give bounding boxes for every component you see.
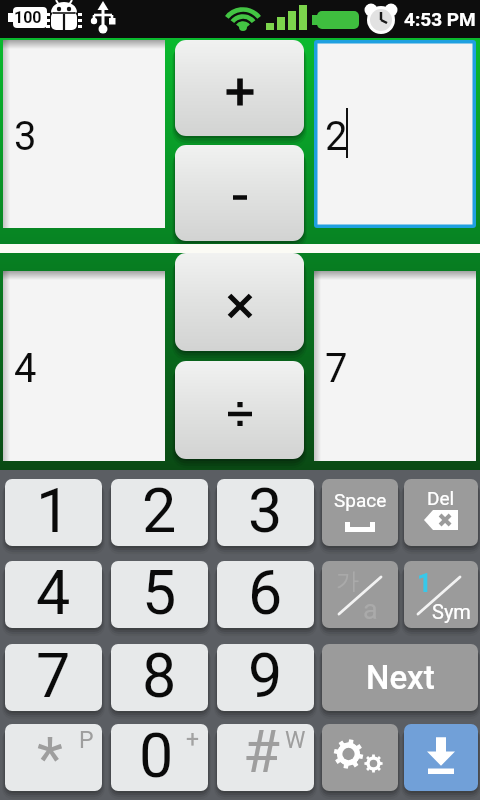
staticText: * bbox=[37, 724, 63, 790]
staticText: 1 bbox=[417, 568, 432, 598]
staticText: P bbox=[79, 727, 94, 754]
staticText: Space bbox=[334, 489, 387, 511]
button[interactable]: Settings bbox=[322, 724, 398, 791]
button[interactable]: 2 bbox=[314, 40, 476, 228]
staticText: 6 bbox=[248, 561, 283, 624]
staticText: 1 bbox=[36, 479, 71, 542]
staticText: # bbox=[243, 724, 280, 783]
button[interactable] bbox=[175, 40, 304, 136]
staticText: 8 bbox=[142, 644, 177, 707]
button[interactable]: 3 bbox=[217, 479, 314, 546]
button[interactable]: 6 bbox=[217, 561, 314, 628]
button[interactable]: Symbols bbox=[404, 561, 478, 628]
button[interactable]: 4 bbox=[5, 561, 102, 628]
button[interactable]: 5 bbox=[111, 561, 208, 628]
button[interactable] bbox=[175, 361, 304, 459]
button[interactable]: # bbox=[217, 724, 314, 791]
staticText: 4 bbox=[14, 345, 37, 392]
button[interactable]: Language bbox=[322, 561, 398, 628]
button[interactable]: * bbox=[5, 724, 102, 791]
button[interactable]: 8 bbox=[111, 644, 208, 711]
staticText: 9 bbox=[248, 644, 283, 707]
button[interactable]: 4 bbox=[3, 271, 165, 461]
staticText: 7 bbox=[36, 644, 71, 707]
button[interactable]: 9 bbox=[217, 644, 314, 711]
staticText: Sym bbox=[432, 600, 471, 623]
button[interactable]: 3 bbox=[3, 40, 165, 228]
staticText: 5 bbox=[142, 561, 177, 624]
button[interactable]: Delete bbox=[404, 479, 478, 546]
button[interactable]: Next bbox=[322, 644, 478, 711]
staticText: a bbox=[363, 594, 378, 626]
staticText: 3 bbox=[14, 113, 37, 160]
button[interactable]: 0 bbox=[111, 724, 208, 791]
staticText: 가 bbox=[336, 567, 359, 596]
button[interactable]: 1 bbox=[5, 479, 102, 546]
button[interactable] bbox=[175, 253, 304, 351]
staticText: 7 bbox=[325, 345, 348, 392]
staticText: W bbox=[285, 727, 306, 754]
button[interactable]: 7 bbox=[314, 271, 476, 461]
staticText: Next bbox=[366, 658, 435, 697]
staticText: + bbox=[186, 726, 200, 753]
button[interactable]: 7 bbox=[5, 644, 102, 711]
button[interactable] bbox=[175, 145, 304, 241]
button[interactable]: Space bbox=[322, 479, 398, 546]
staticText: 4:53 PM bbox=[404, 8, 476, 30]
staticText: 4 bbox=[36, 561, 71, 624]
button[interactable]: 2 bbox=[111, 479, 208, 546]
button[interactable]: Download bbox=[404, 724, 478, 791]
staticText: 2 bbox=[325, 113, 348, 160]
staticText: 0 bbox=[139, 724, 174, 787]
staticText: 2 bbox=[142, 479, 177, 542]
staticText: 100 bbox=[14, 8, 42, 27]
staticText: Del bbox=[427, 487, 455, 509]
staticText: 3 bbox=[248, 479, 283, 542]
